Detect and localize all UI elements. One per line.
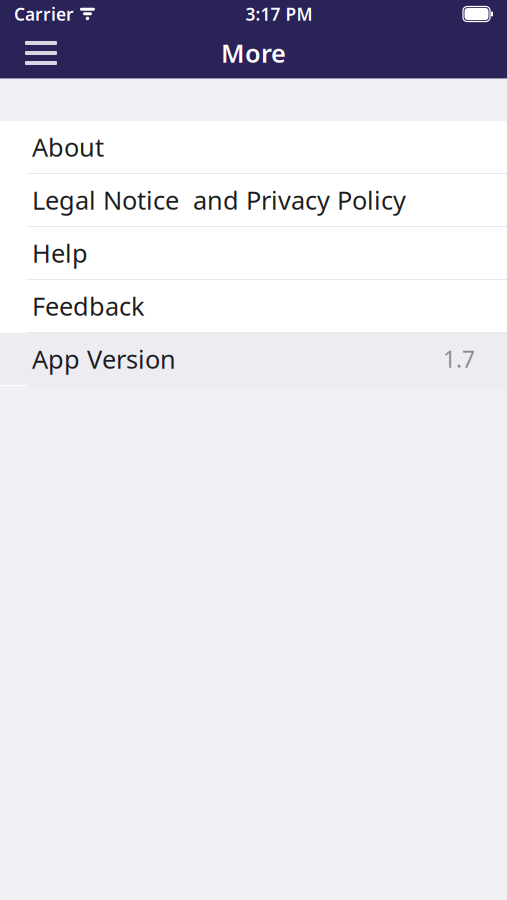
button[interactable]: Help [0,227,507,279]
staticText: 1.7 [443,344,475,374]
staticText: App Version [32,342,176,376]
staticText: Legal Notice and Privacy Policy [32,183,406,217]
button[interactable]: Menu [11,29,71,77]
staticText: 3:17 PM [245,2,312,25]
button[interactable]: App Version [0,333,507,385]
button[interactable]: About [0,121,507,173]
staticText: More [221,36,286,70]
button[interactable]: Feedback [0,280,507,332]
staticText: Help [32,236,88,270]
staticText: About [32,130,104,164]
staticText: Carrier [14,2,74,25]
staticText: Feedback [32,289,145,323]
button[interactable]: Legal Notice and Privacy Policy [0,174,507,226]
